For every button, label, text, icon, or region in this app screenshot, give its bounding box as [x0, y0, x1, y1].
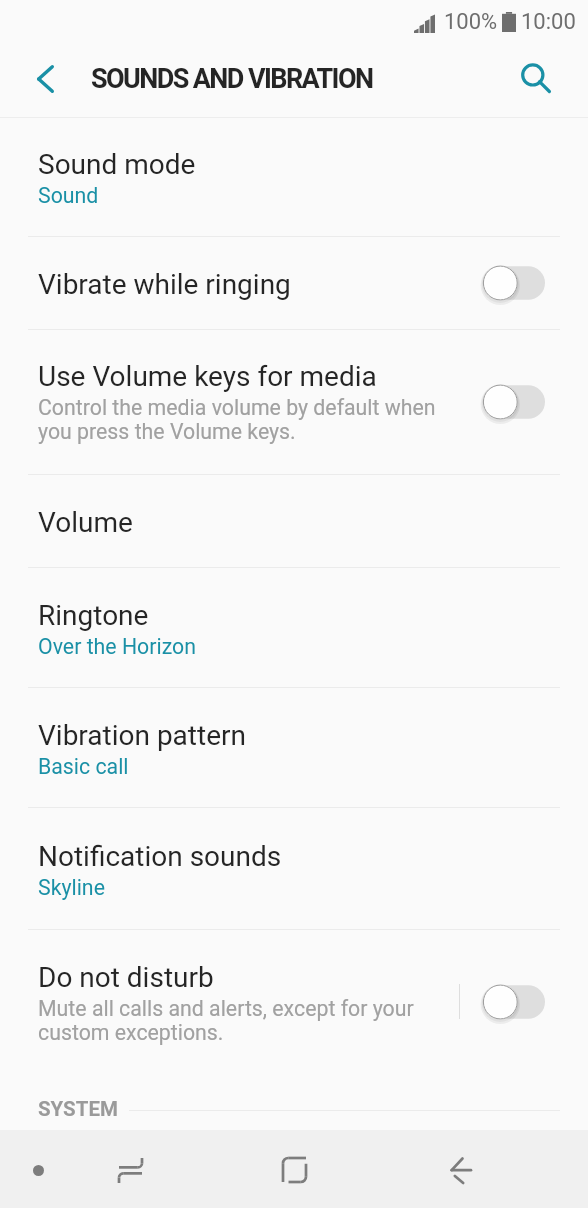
staticText: Basic call	[38, 754, 129, 779]
staticText: SOUNDS AND VIBRATION	[91, 63, 373, 95]
staticText: Notification sounds	[38, 840, 282, 873]
button[interactable]: Do not disturb	[0, 930, 588, 1073]
button[interactable]: Vibrate while ringing	[0, 237, 588, 329]
staticText: 100%	[444, 9, 498, 35]
button[interactable]: Ringtone	[0, 568, 588, 687]
staticText: Use Volume keys for media	[38, 360, 377, 393]
button[interactable]: Recent apps	[102, 1142, 158, 1198]
button[interactable]: Navigate up	[12, 44, 78, 117]
button[interactable]: Search	[514, 44, 580, 117]
staticText: Ringtone	[38, 599, 149, 632]
button[interactable]: Hide navigation bar	[10, 1142, 66, 1198]
staticText: Vibrate while ringing	[38, 268, 291, 301]
button[interactable]: Back	[431, 1142, 487, 1198]
staticText: Do not disturb	[38, 961, 214, 994]
button[interactable]: Home	[266, 1142, 322, 1198]
staticText: Vibration pattern	[38, 719, 246, 752]
button[interactable]: Notification sounds	[0, 808, 588, 929]
button[interactable]: Vibration pattern	[0, 688, 588, 807]
button[interactable]: Sound mode	[0, 118, 588, 236]
staticText: Volume	[38, 506, 133, 539]
staticText: 10:00	[521, 9, 576, 35]
button[interactable]: Use Volume keys for media	[0, 330, 588, 474]
staticText: Skyline	[38, 875, 105, 900]
staticText: SYSTEM	[38, 1097, 118, 1121]
staticText: Over the Horizon	[38, 634, 196, 659]
staticText: Mute all calls and alerts, except for yo…	[38, 996, 414, 1045]
button[interactable]: Volume	[0, 475, 588, 567]
staticText: Sound	[38, 183, 99, 208]
staticText: Sound mode	[38, 148, 196, 181]
staticText: Control the media volume by default when…	[38, 395, 436, 444]
